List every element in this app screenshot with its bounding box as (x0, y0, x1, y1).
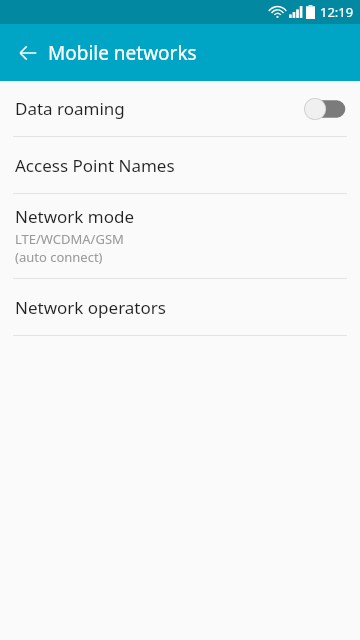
staticText: Mobile networks (48, 40, 197, 66)
button[interactable]: Network operators (0, 279, 360, 335)
staticText: Data roaming (15, 97, 305, 120)
button[interactable]: Access Point Names (0, 137, 360, 193)
button[interactable]: Data roaming (0, 81, 360, 136)
staticText: Network mode (15, 205, 135, 228)
button[interactable]: Back (8, 33, 48, 73)
staticText: 12:19 (320, 3, 354, 21)
staticText: (auto connect) (15, 248, 103, 266)
staticText: LTE/WCDMA/GSM (15, 230, 124, 248)
staticText: Network operators (15, 296, 166, 319)
staticText: Access Point Names (15, 154, 175, 177)
button[interactable]: Network mode (0, 194, 360, 278)
